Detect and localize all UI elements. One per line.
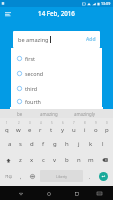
staticText: 9 — [95, 121, 97, 125]
button[interactable]: third — [11, 81, 102, 96]
staticText: 5 — [51, 121, 53, 125]
staticText: m — [88, 156, 94, 164]
staticText: Liberty — [56, 174, 68, 179]
staticText: f — [42, 140, 45, 148]
button[interactable]: n — [73, 152, 85, 168]
staticText: 8 — [84, 121, 86, 125]
button[interactable]: Add — [85, 35, 97, 44]
staticText: b — [65, 156, 69, 164]
staticText: d — [30, 140, 34, 148]
button[interactable]: Switch keyboard — [94, 188, 104, 198]
button[interactable]: 9 — [90, 120, 101, 136]
button[interactable]: 4 — [35, 120, 46, 136]
staticText: l — [102, 140, 104, 148]
button[interactable]: 5 — [46, 120, 57, 136]
button[interactable]: 3 — [24, 120, 35, 136]
button[interactable]: first — [11, 51, 102, 66]
button[interactable]: s — [15, 136, 26, 152]
staticText: third — [25, 85, 38, 92]
staticText: amazing — [40, 111, 58, 117]
staticText: y — [61, 126, 65, 134]
staticText: x — [30, 156, 34, 164]
button[interactable]: Back — [15, 188, 26, 199]
button[interactable]: Backspace — [97, 152, 112, 168]
staticText: r — [39, 126, 42, 134]
button[interactable]: Shift — [1, 152, 15, 168]
staticText: fourth — [25, 98, 41, 105]
button[interactable]: l — [97, 136, 109, 152]
button[interactable]: 0 — [101, 120, 112, 136]
staticText: be — [17, 111, 23, 117]
button[interactable]: d — [26, 136, 37, 152]
button[interactable]: h — [61, 136, 73, 152]
staticText: j — [78, 140, 80, 148]
button[interactable]: be — [17, 111, 23, 117]
button[interactable]: Home — [43, 188, 54, 199]
staticText: Add — [86, 36, 96, 43]
button[interactable]: c — [37, 152, 49, 168]
staticText: o — [94, 126, 98, 134]
staticText: 7 — [73, 121, 75, 125]
button[interactable]: m — [85, 152, 97, 168]
staticText: g — [53, 140, 57, 148]
staticText: 6 — [62, 121, 64, 125]
button[interactable]: amazingly — [74, 111, 96, 117]
button[interactable]: . — [85, 168, 95, 184]
button[interactable]: a — [4, 136, 15, 152]
button[interactable]: z — [15, 152, 26, 168]
staticText: 14 Feb, 2016 — [38, 9, 75, 17]
staticText: s — [19, 140, 22, 148]
staticText: first — [25, 55, 35, 62]
button[interactable]: amazing — [40, 111, 58, 117]
staticText: z — [19, 156, 22, 164]
button[interactable]: j — [73, 136, 85, 152]
staticText: 0 — [106, 121, 108, 125]
button[interactable]: Enter — [99, 172, 108, 181]
staticText: k — [89, 140, 93, 148]
staticText: u — [72, 126, 76, 134]
staticText: a — [8, 140, 12, 148]
staticText: 1 — [6, 121, 8, 125]
staticText: i — [84, 126, 86, 134]
button[interactable]: Emoji — [26, 168, 38, 184]
staticText: be amazing — [18, 36, 49, 44]
staticText: amazingly — [74, 111, 96, 117]
staticText: 2 — [18, 121, 20, 125]
staticText: w — [16, 126, 21, 134]
button[interactable]: , — [16, 168, 26, 184]
staticText: 3 — [29, 121, 31, 125]
button[interactable]: second — [11, 66, 102, 81]
button[interactable]: k — [85, 136, 97, 152]
staticText: 13:09 — [101, 1, 111, 6]
button[interactable]: 8 — [79, 120, 90, 136]
button[interactable]: v — [49, 152, 61, 168]
button[interactable]: Open navigation menu — [3, 9, 12, 18]
button[interactable]: g — [49, 136, 61, 152]
staticText: q — [5, 126, 9, 134]
staticText: , — [20, 173, 22, 180]
staticText: p — [105, 126, 109, 134]
button[interactable]: Recent apps — [71, 188, 82, 199]
button[interactable]: 7 — [68, 120, 79, 136]
staticText: e — [28, 126, 32, 134]
staticText: . — [89, 173, 91, 180]
button[interactable]: Space — [40, 170, 83, 182]
button[interactable]: 2 — [13, 120, 24, 136]
staticText: ?1☺ — [5, 174, 13, 179]
button[interactable]: ?1☺ — [1, 168, 16, 184]
button[interactable]: 6 — [57, 120, 68, 136]
staticText: h — [65, 140, 69, 148]
button[interactable]: x — [26, 152, 37, 168]
staticText: v — [53, 156, 57, 164]
button[interactable]: f — [37, 136, 49, 152]
staticText: second — [25, 70, 44, 77]
button[interactable]: fourth — [11, 96, 102, 107]
button[interactable]: be amazing — [13, 31, 100, 48]
staticText: n — [77, 156, 81, 164]
button[interactable]: b — [61, 152, 73, 168]
staticText: c — [42, 156, 45, 164]
button[interactable]: 1 — [1, 120, 13, 136]
staticText: 4 — [40, 121, 42, 125]
staticText: t — [50, 126, 53, 134]
